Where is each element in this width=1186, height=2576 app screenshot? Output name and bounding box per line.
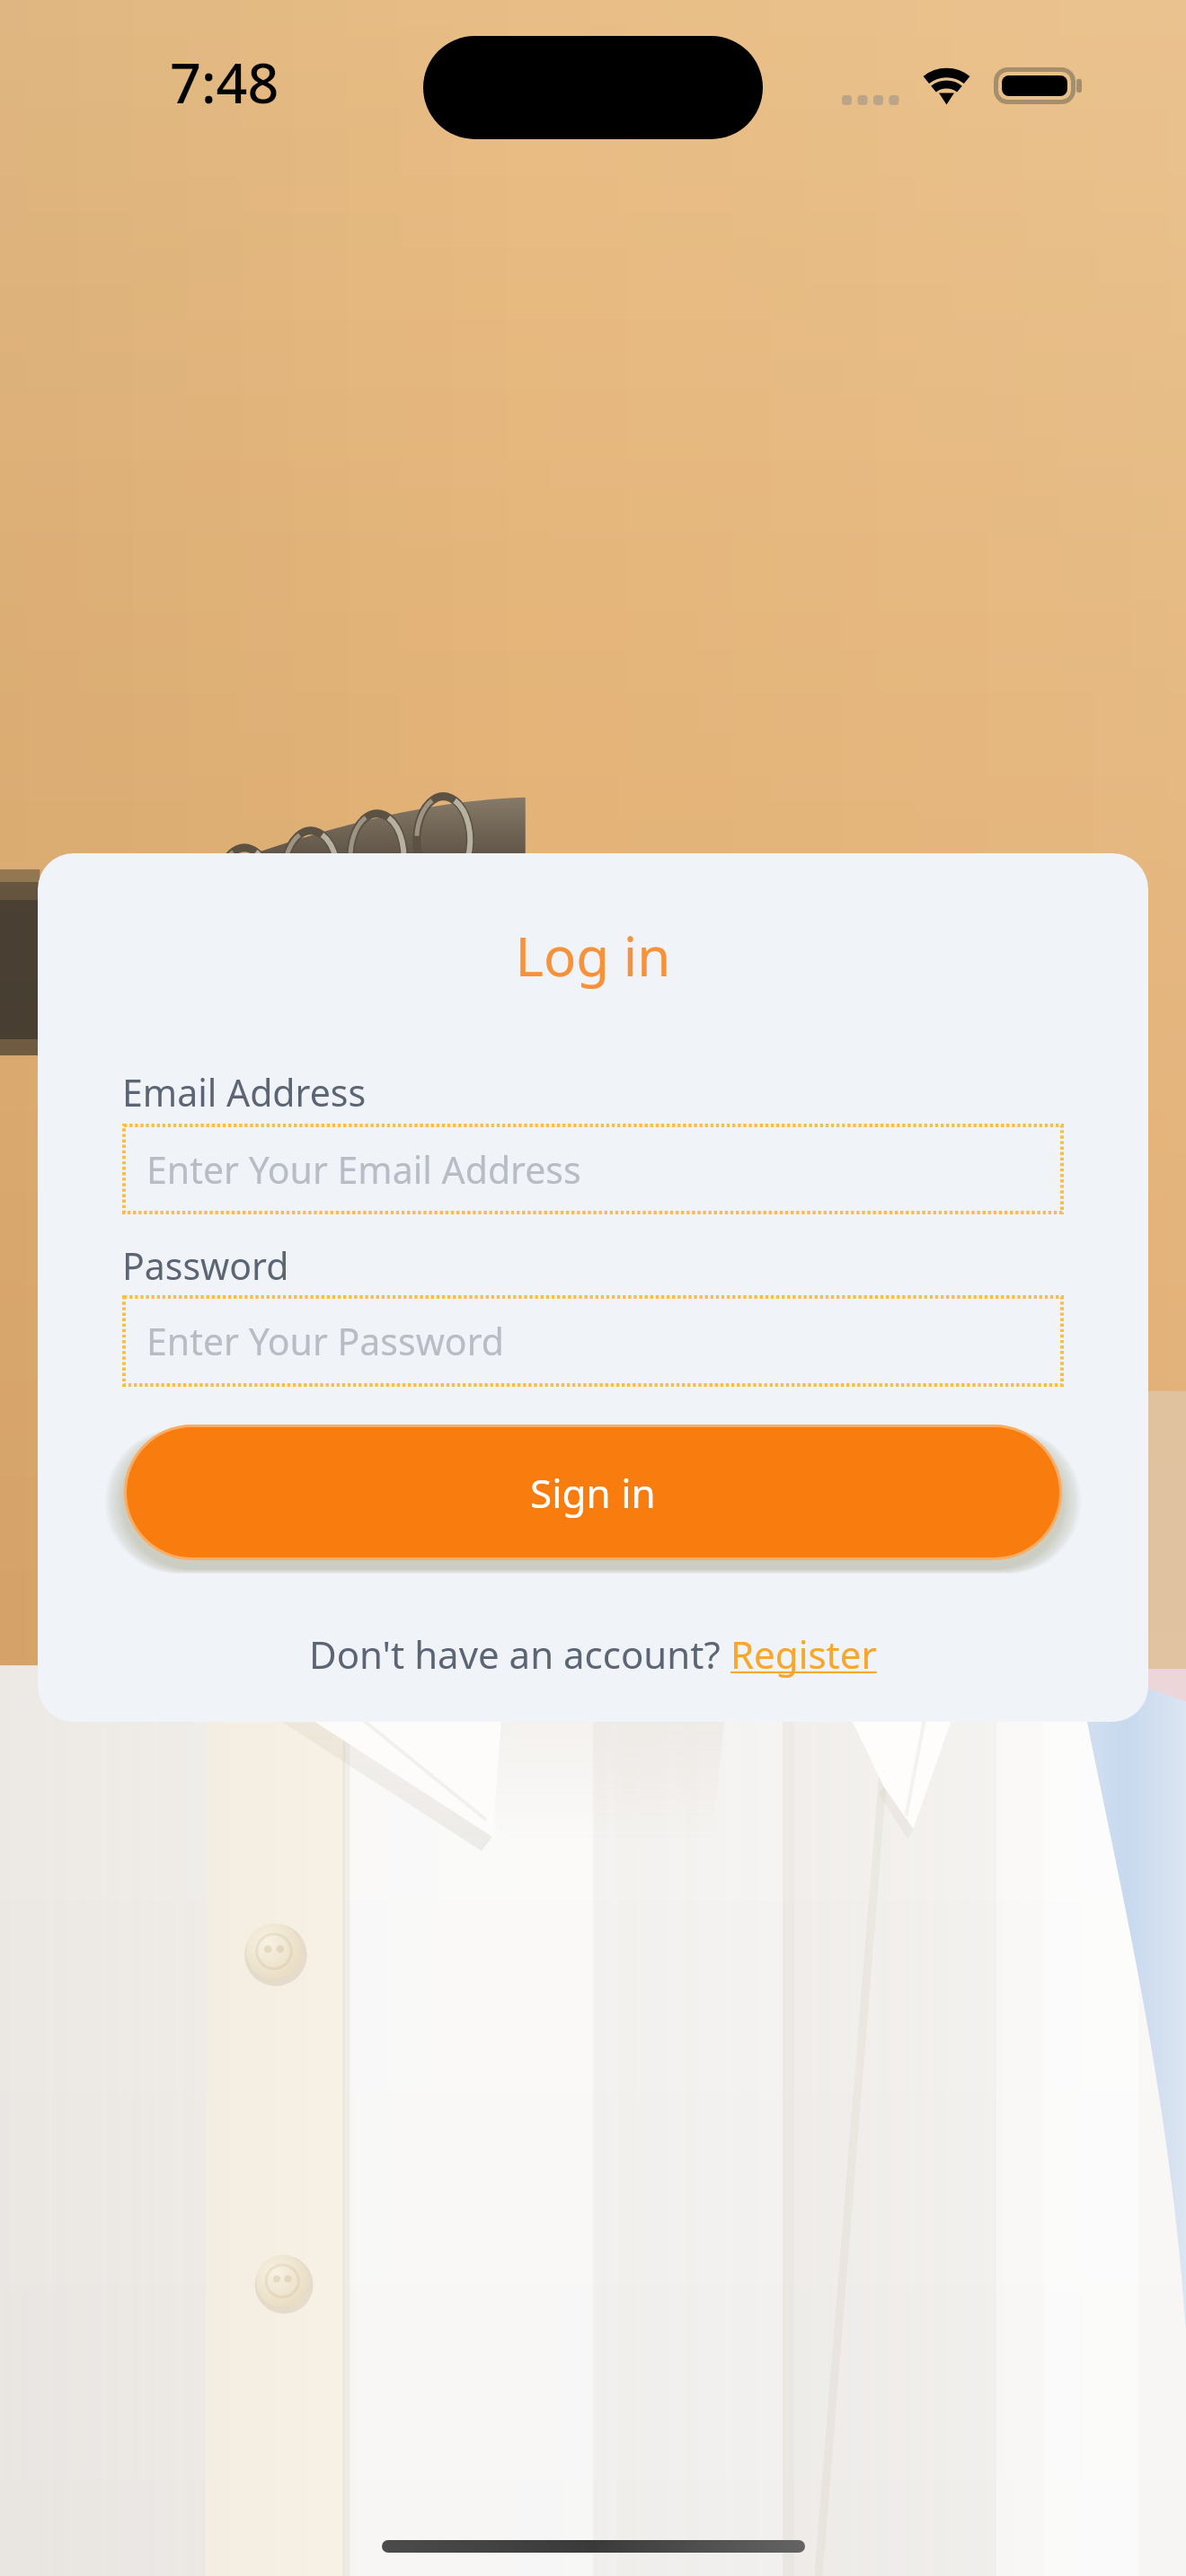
staticText: Log in bbox=[38, 919, 1148, 992]
staticText: 7:48 bbox=[170, 45, 279, 119]
button[interactable]: Enter Your Password bbox=[124, 1297, 1062, 1385]
staticText: Don't have an account? bbox=[309, 1628, 730, 1680]
button[interactable]: Register bbox=[730, 1628, 877, 1680]
staticText: Email Address bbox=[122, 1067, 367, 1117]
staticText: Sign in bbox=[530, 1466, 656, 1520]
staticText: Register bbox=[730, 1628, 877, 1680]
staticText: Enter Your Email Address bbox=[146, 1144, 581, 1195]
button[interactable]: Enter Your Email Address bbox=[124, 1125, 1062, 1213]
staticText: Enter Your Password bbox=[146, 1316, 504, 1366]
staticText: Password bbox=[122, 1240, 289, 1291]
button[interactable]: Sign in bbox=[127, 1427, 1059, 1557]
